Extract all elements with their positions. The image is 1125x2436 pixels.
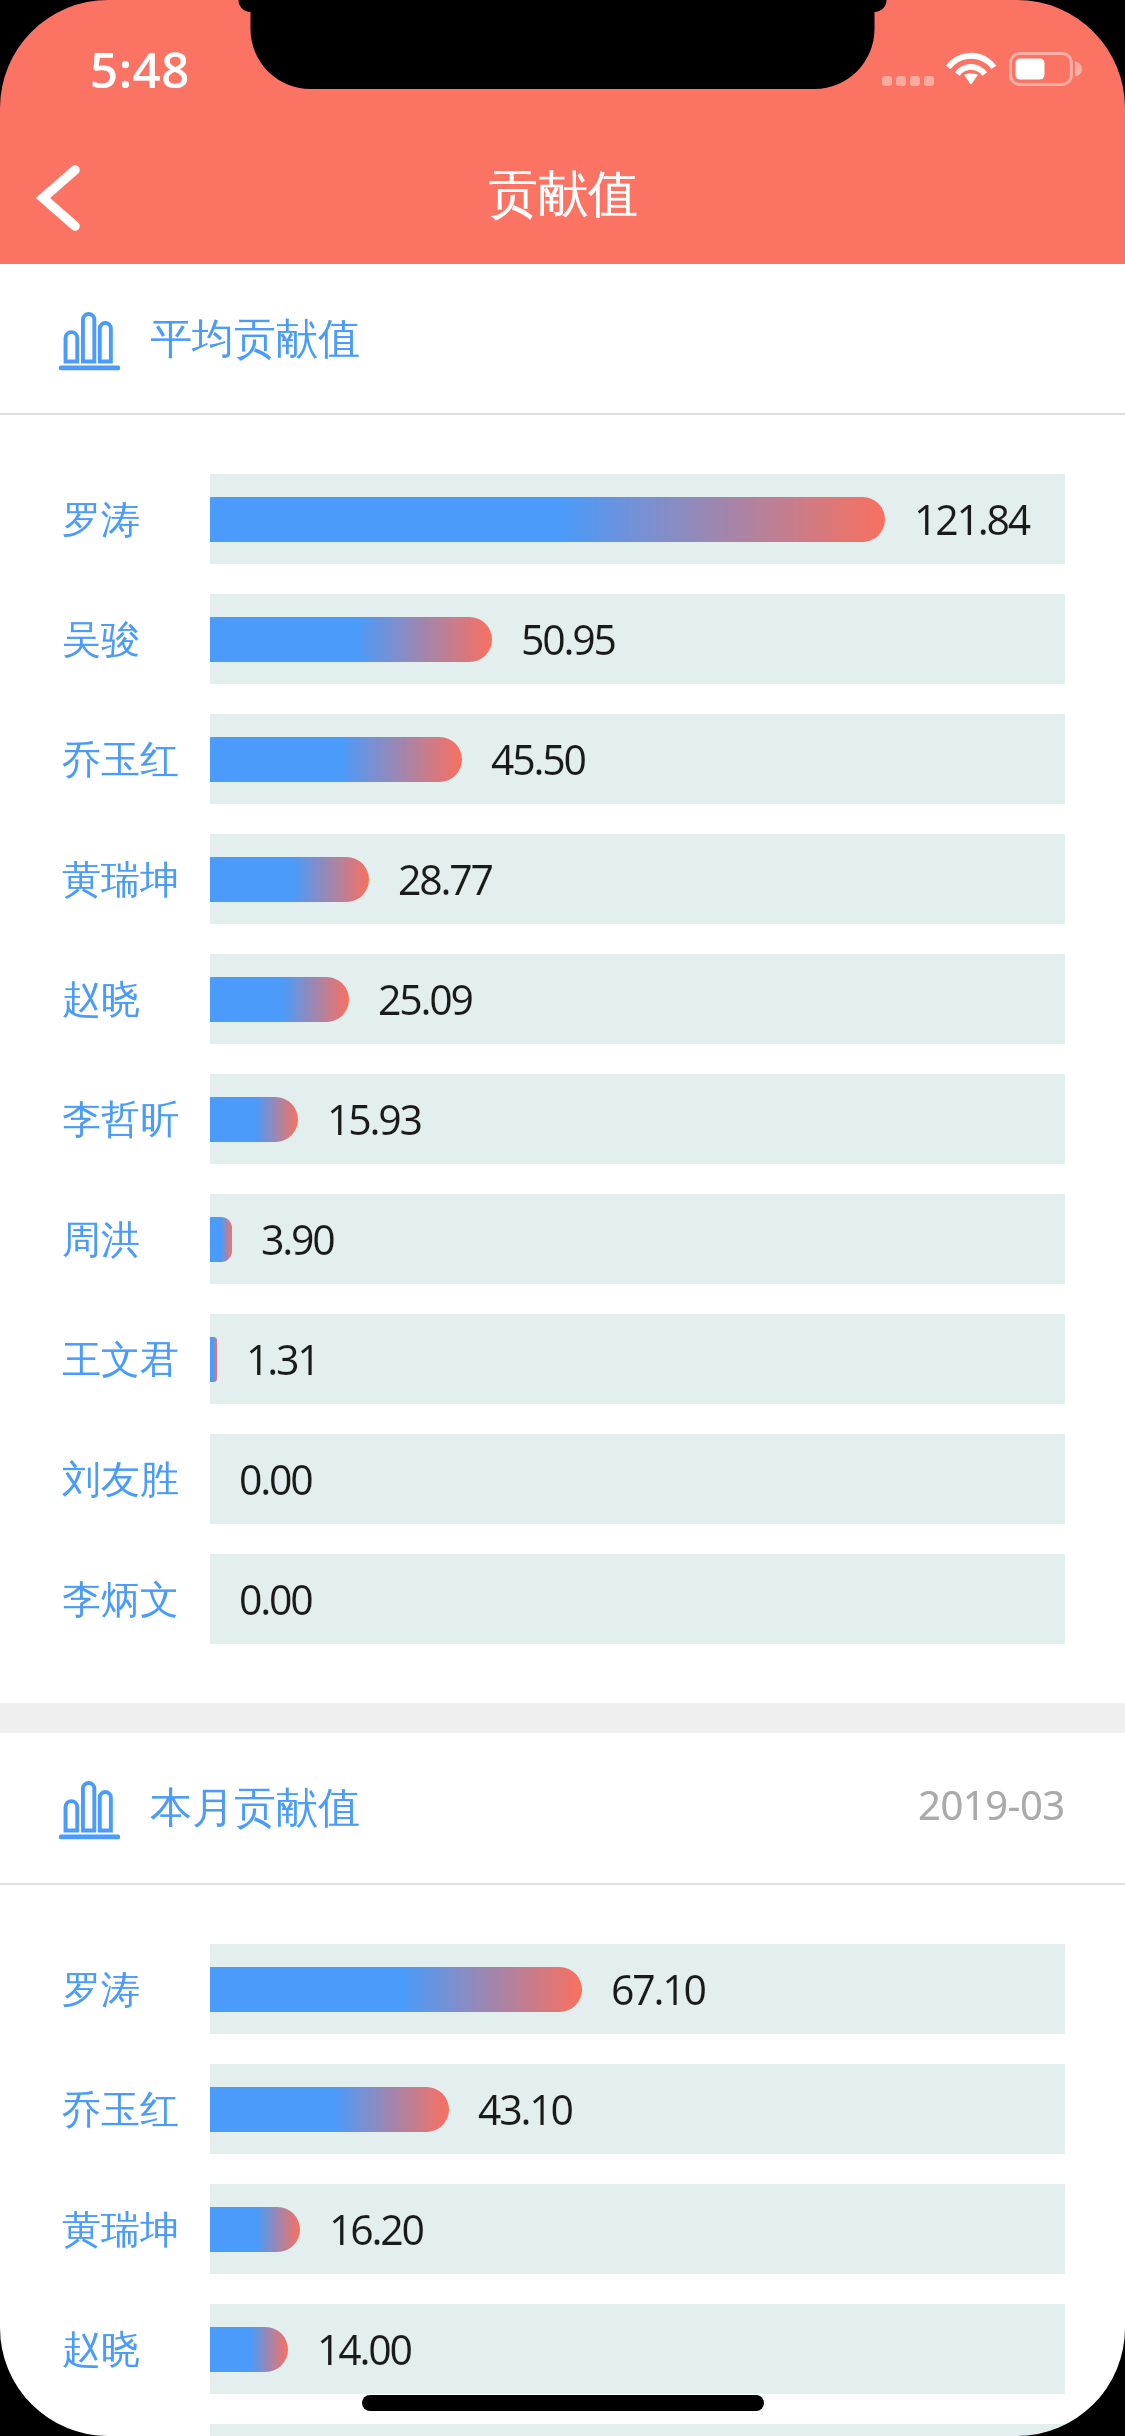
staticText: 赵晓 [62,2325,140,2374]
button[interactable]: 罗涛 [0,1944,1125,2034]
staticText: 周洪 [62,1215,140,1264]
staticText: 16.20 [329,2201,423,2257]
staticText: 50.95 [521,611,615,667]
staticText: 王文君 [62,1335,179,1384]
button[interactable]: 赵晓 [0,2304,1125,2394]
button[interactable]: 平均贡献值 [0,264,1125,414]
button[interactable]: 乔玉红 [0,2064,1125,2154]
staticText: 乔玉红 [62,735,179,784]
staticText: 5:48 [90,36,190,103]
staticText: 28.77 [398,851,492,907]
button[interactable]: Back [0,124,120,264]
button[interactable]: 黄瑞坤 [0,834,1125,924]
button[interactable]: 吴骏 [0,594,1125,684]
staticText: 李哲昕 [62,1095,179,1144]
button[interactable]: 李炳文 [0,1554,1125,1644]
staticText: 黄瑞坤 [62,2205,179,2254]
button[interactable]: 王文君 [0,1314,1125,1404]
staticText: 14.00 [317,2321,411,2377]
button[interactable]: 李哲昕 [0,1074,1125,1164]
staticText: 贡献值 [488,163,638,226]
staticText: 黄瑞坤 [62,855,179,904]
button[interactable]: 刘友胜 [0,1434,1125,1524]
staticText: 0.00 [239,1451,312,1507]
staticText: 67.10 [611,1961,705,2017]
staticText: 0.00 [239,1571,312,1627]
staticText: 罗涛 [62,1965,140,2014]
staticText: 43.10 [478,2081,572,2137]
staticText: 李炳文 [62,1575,179,1624]
button[interactable]: 周洪 [0,1194,1125,1284]
staticText: 平均贡献值 [150,313,360,366]
button[interactable]: 周洪 [0,2424,1125,2436]
staticText: 1.31 [246,1331,319,1387]
staticText: 2019-03 [918,1777,1065,1831]
button[interactable]: 罗涛 [0,474,1125,564]
staticText: 本月贡献值 [150,1782,360,1835]
button[interactable]: 赵晓 [0,954,1125,1044]
staticText: 刘友胜 [62,1455,179,1504]
button[interactable]: 本月贡献值 [0,1733,1125,1883]
staticText: 罗涛 [62,495,140,544]
button[interactable]: 黄瑞坤 [0,2184,1125,2274]
staticText: 15.93 [327,1091,421,1147]
staticText: 乔玉红 [62,2085,179,2134]
staticText: 吴骏 [62,615,140,664]
button[interactable]: 乔玉红 [0,714,1125,804]
staticText: 25.09 [378,971,472,1027]
staticText: 赵晓 [62,975,140,1024]
staticText: 3.90 [261,1211,334,1267]
staticText: 121.84 [914,491,1030,547]
staticText: 45.50 [491,731,585,787]
